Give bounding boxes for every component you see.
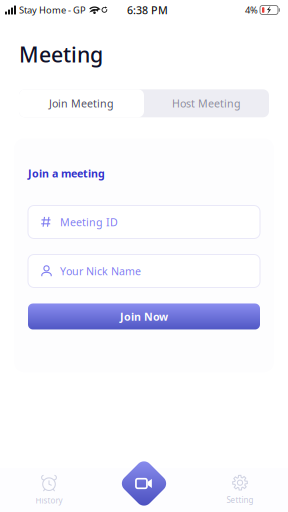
- button[interactable]: Start a meeting: [116, 455, 172, 512]
- staticText: Your Nick Name: [60, 264, 141, 278]
- staticText: Stay Home - GP: [19, 4, 86, 16]
- staticText: Join a meeting: [28, 166, 105, 180]
- button[interactable]: Join Now: [28, 303, 260, 329]
- staticText: 6:38 PM: [127, 3, 168, 17]
- button[interactable]: History: [0, 468, 98, 512]
- staticText: 4%: [245, 4, 258, 16]
- staticText: Meeting ID: [60, 215, 118, 229]
- button[interactable]: Join Meeting: [19, 89, 144, 117]
- button[interactable]: Host Meeting: [144, 89, 269, 117]
- staticText: Meeting: [19, 40, 103, 68]
- staticText: Host Meeting: [172, 96, 241, 110]
- staticText: Join Meeting: [49, 96, 114, 110]
- staticText: Join Now: [120, 309, 168, 324]
- button[interactable]: Setting: [192, 468, 288, 512]
- staticText: Setting: [226, 495, 253, 505]
- staticText: History: [35, 495, 62, 506]
